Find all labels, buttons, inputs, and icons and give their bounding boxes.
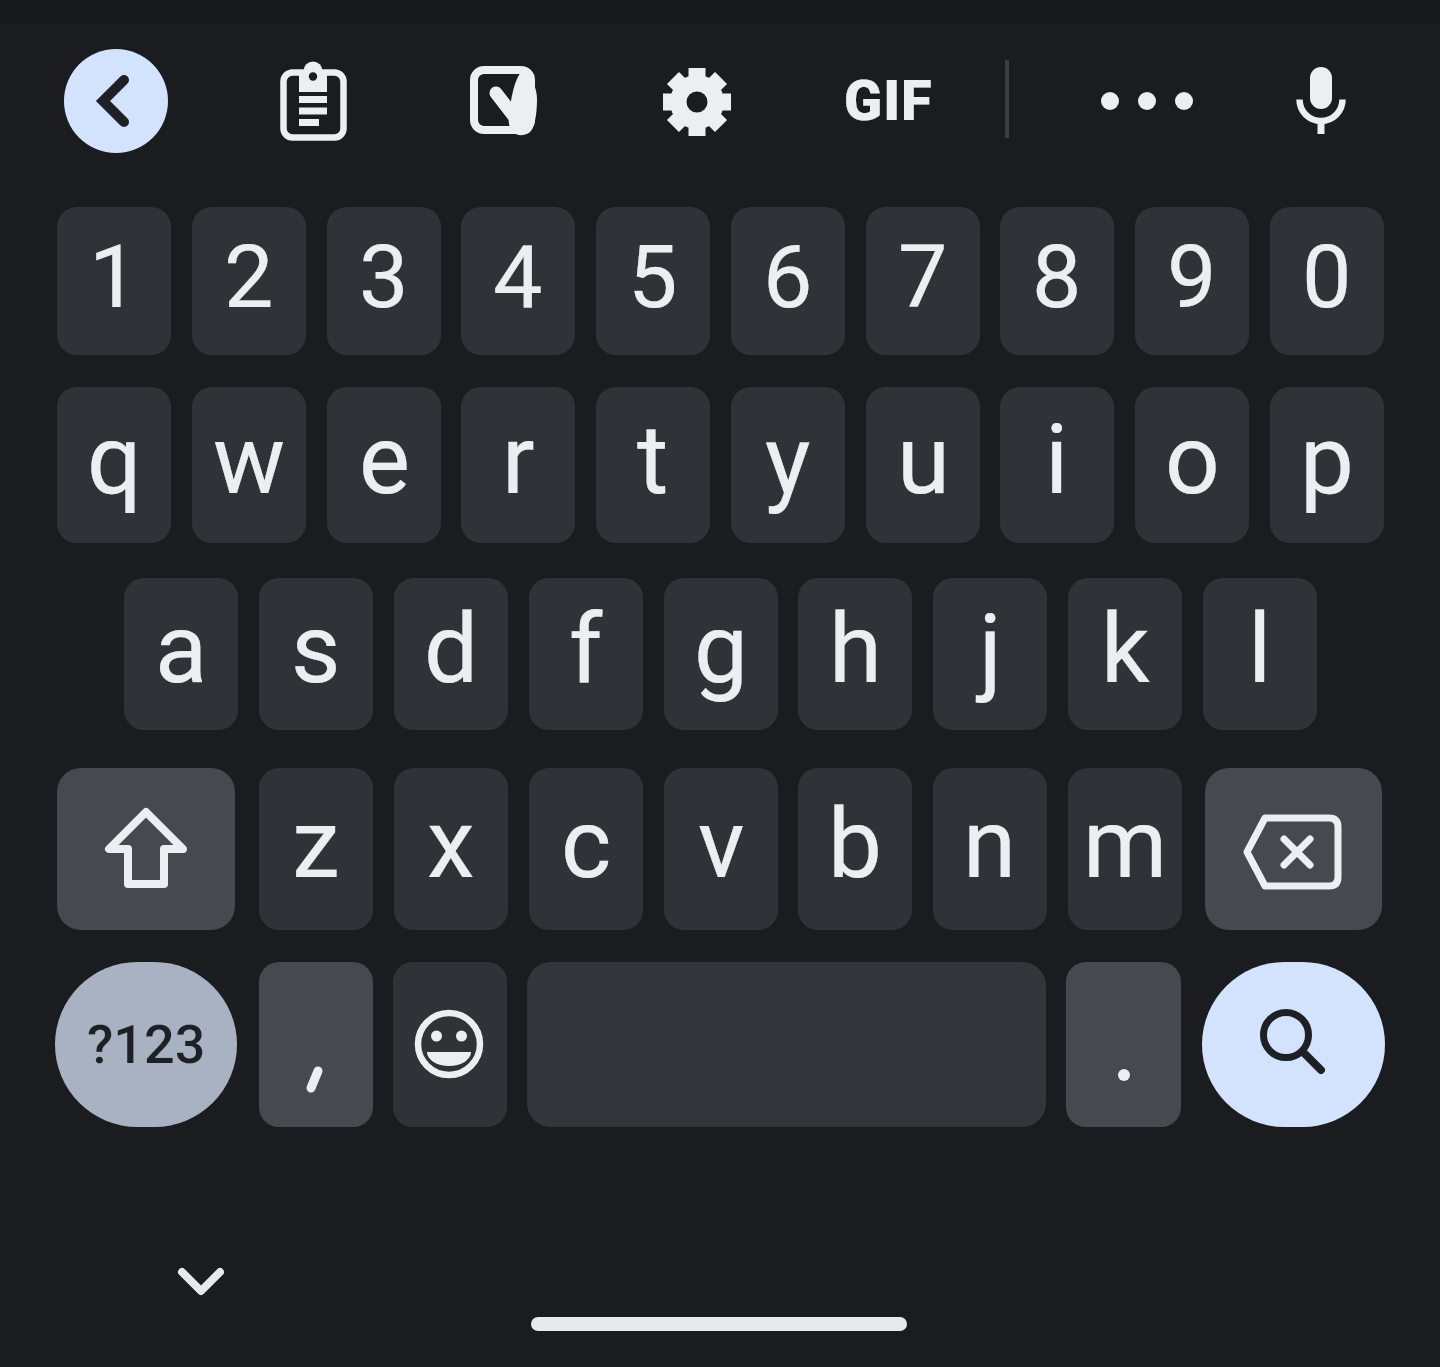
- button[interactable]: 6: [731, 207, 845, 355]
- button[interactable]: [1269, 49, 1373, 153]
- button[interactable]: 4: [461, 207, 575, 355]
- staticText: z: [292, 788, 340, 901]
- staticText: i: [1045, 404, 1069, 517]
- button[interactable]: f: [529, 578, 643, 730]
- staticText: v: [698, 788, 745, 901]
- staticText: u: [897, 404, 950, 517]
- staticText: 7: [898, 225, 948, 328]
- button[interactable]: v: [664, 768, 778, 930]
- button[interactable]: GIF: [836, 49, 940, 153]
- button[interactable]: 5: [596, 207, 710, 355]
- button[interactable]: w: [192, 387, 306, 543]
- button[interactable]: [1205, 768, 1382, 930]
- button[interactable]: [1202, 962, 1385, 1127]
- button[interactable]: r: [461, 387, 575, 543]
- button[interactable]: b: [798, 768, 912, 930]
- staticText: t: [637, 404, 669, 517]
- staticText: j: [979, 593, 1002, 706]
- button[interactable]: 0: [1270, 207, 1384, 355]
- button[interactable]: [64, 49, 168, 153]
- button[interactable]: x: [394, 768, 508, 930]
- button[interactable]: g: [664, 578, 778, 730]
- button[interactable]: u: [866, 387, 980, 543]
- staticText: m: [1083, 788, 1168, 901]
- button[interactable]: e: [327, 387, 441, 543]
- staticText: GIF: [844, 68, 933, 134]
- staticText: a: [155, 593, 208, 706]
- staticText: b: [828, 788, 882, 901]
- button[interactable]: [645, 50, 749, 154]
- staticText: p: [1300, 404, 1354, 517]
- staticText: r: [502, 404, 535, 517]
- button[interactable]: k: [1068, 578, 1182, 730]
- button[interactable]: [161, 1242, 241, 1322]
- staticText: 0: [1302, 225, 1352, 328]
- staticText: q: [87, 404, 142, 517]
- button[interactable]: [261, 51, 365, 155]
- staticText: n: [963, 788, 1017, 901]
- staticText: 3: [359, 225, 409, 328]
- button[interactable]: j: [933, 578, 1047, 730]
- staticText: l: [1248, 593, 1272, 706]
- button[interactable]: o: [1135, 387, 1249, 543]
- staticText: h: [829, 593, 882, 706]
- button[interactable]: 2: [192, 207, 306, 355]
- staticText: e: [359, 404, 410, 517]
- button[interactable]: 3: [327, 207, 441, 355]
- button[interactable]: 9: [1135, 207, 1249, 355]
- staticText: x: [427, 788, 475, 901]
- button[interactable]: a: [124, 578, 238, 730]
- button[interactable]: 1: [57, 207, 171, 355]
- staticText: w: [213, 404, 286, 517]
- button[interactable]: [259, 962, 373, 1127]
- button[interactable]: c: [529, 768, 643, 930]
- button[interactable]: s: [259, 578, 373, 730]
- button[interactable]: n: [933, 768, 1047, 930]
- staticText: 8: [1032, 225, 1082, 328]
- button[interactable]: l: [1203, 578, 1317, 730]
- staticText: f: [569, 593, 603, 706]
- button[interactable]: d: [394, 578, 508, 730]
- staticText: 2: [224, 225, 274, 328]
- staticText: 4: [493, 225, 543, 328]
- button[interactable]: 7: [866, 207, 980, 355]
- button[interactable]: [1066, 962, 1181, 1127]
- button[interactable]: m: [1068, 768, 1182, 930]
- button[interactable]: [1095, 49, 1199, 153]
- button[interactable]: z: [259, 768, 373, 930]
- staticText: ?123: [87, 1013, 206, 1076]
- button[interactable]: [451, 49, 555, 153]
- staticText: 5: [628, 225, 678, 328]
- staticText: k: [1101, 593, 1150, 706]
- staticText: 9: [1167, 225, 1217, 328]
- button[interactable]: q: [57, 387, 171, 543]
- button[interactable]: i: [1000, 387, 1114, 543]
- staticText: 6: [763, 225, 813, 328]
- staticText: g: [694, 593, 748, 706]
- staticText: d: [424, 593, 479, 706]
- button[interactable]: 8: [1000, 207, 1114, 355]
- staticText: c: [561, 788, 612, 901]
- button[interactable]: [57, 768, 235, 930]
- button[interactable]: y: [731, 387, 845, 543]
- button[interactable]: h: [798, 578, 912, 730]
- button[interactable]: [393, 962, 507, 1127]
- staticText: o: [1165, 404, 1220, 517]
- button[interactable]: p: [1270, 387, 1384, 543]
- staticText: y: [765, 404, 811, 517]
- staticText: 1: [89, 225, 139, 328]
- button[interactable]: t: [596, 387, 710, 543]
- button[interactable]: ?123: [55, 962, 237, 1127]
- staticText: s: [291, 593, 341, 706]
